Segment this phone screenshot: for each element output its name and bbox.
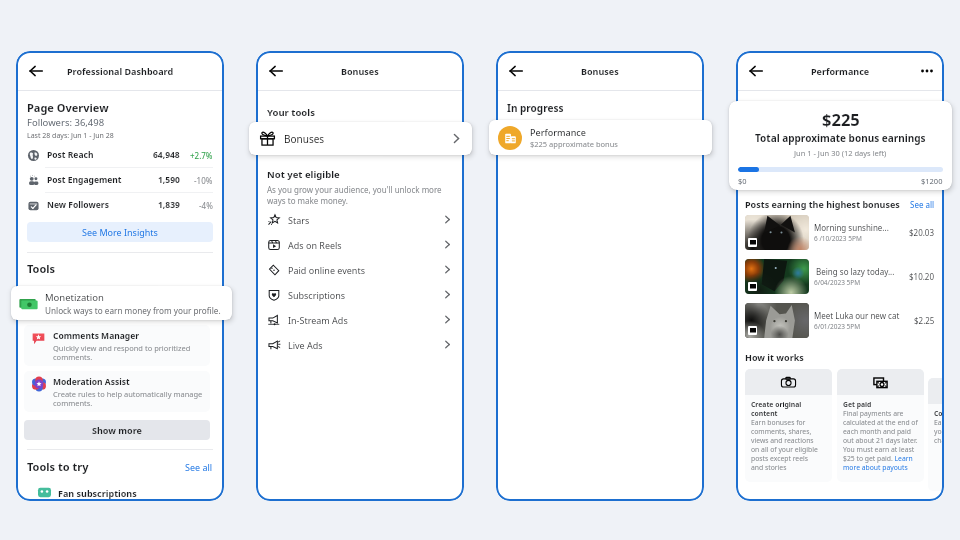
button[interactable]: Back [744,59,768,83]
button[interactable]: Morning sunshine... [745,210,935,254]
staticText: Followers: 36,498 [27,116,105,129]
staticText: Create original content [751,400,802,418]
staticText: See all [185,461,213,473]
button[interactable]: Bonuses [249,122,472,155]
staticText: Comments and [934,409,944,418]
button[interactable]: New Followers [27,193,213,217]
button[interactable]: See all [910,199,935,210]
staticText: Not yet eligible [267,168,340,181]
staticText: $20.03 [909,227,935,238]
staticText: 1,839 [158,199,180,211]
staticText: In progress [507,101,564,115]
staticText: Live Ads [288,339,442,351]
staticText: 64,948 [153,149,180,161]
staticText: 6 /10/2023 5PM [814,234,862,243]
staticText: Post Engagement [47,174,158,186]
staticText: Paid online events [288,264,442,276]
staticText: Professional Dashboard [67,65,174,77]
staticText: 6/04/2023 5PM [814,278,861,287]
staticText: Total approximate bonus earnings [755,131,926,145]
button[interactable]: Create original content [745,369,832,482]
staticText: Comments Manager [53,330,140,342]
staticText: Earn bonuses for comments, shares, views… [751,418,818,472]
staticText: Performance [530,126,586,138]
button[interactable]: Meet Luka our new cat [745,298,935,342]
staticText: Performance [811,65,870,77]
button[interactable]: Post Reach [27,143,213,167]
staticText: Stars [288,214,442,226]
staticText: $225 [822,108,860,130]
staticText: Bonuses [284,132,450,146]
staticText: Post Reach [47,149,153,161]
button[interactable]: More options [916,60,938,82]
button[interactable]: Subscriptions [267,282,453,307]
staticText: See all [910,199,935,210]
button[interactable]: Being so lazy today... [745,254,935,298]
staticText: Get paid [843,400,872,409]
staticText: Tools [27,261,56,276]
staticText: Final payments are calculated at the end… [843,409,918,472]
button[interactable]: Live Ads [267,332,453,357]
button[interactable]: Performance [489,120,712,155]
staticText: Monetization [45,291,104,304]
button[interactable]: Show more [24,420,210,440]
staticText: 6/01/2023 5PM [814,322,861,331]
staticText: -4% [199,200,213,211]
staticText: Earn bonuses you get on channel [934,418,944,445]
staticText: Create rules to help automatically manag… [53,389,203,409]
staticText: $10.20 [909,271,935,282]
staticText: Unlock ways to earn money from your prof… [45,305,221,316]
staticText: Subscriptions [288,289,442,301]
staticText: Your tools [267,106,315,119]
staticText: Show more [92,424,142,436]
staticText: $225 approximate bonus [530,139,618,149]
staticText: Meet Luka our new cat [814,310,900,321]
button[interactable]: Back [24,59,48,83]
staticText: Fan subscriptions [58,487,137,499]
staticText: Moderation Assist [53,376,130,388]
button[interactable]: Back [504,59,528,83]
staticText: Bonuses [341,65,379,77]
staticText: Jun 1 - Jun 30 (12 days left) [794,148,887,158]
button[interactable]: Monetization [11,286,232,320]
staticText: Being so lazy today... [814,266,895,277]
button[interactable]: Paid online events [267,257,453,282]
staticText: $2.25 [914,315,935,326]
staticText: Quickly view and respond to prioritized … [53,343,191,363]
button[interactable]: Comments and [928,378,944,491]
staticText: $1200 [921,176,943,185]
staticText: +2.7% [190,150,213,161]
staticText: Ads on Reels [288,239,442,251]
button[interactable]: See More Insights [27,222,213,242]
button[interactable]: Get paid [837,369,924,482]
staticText: Posts earning the highest bonuses [745,198,910,210]
button[interactable]: Ads on Reels [267,232,453,257]
button[interactable]: Back [264,59,288,83]
staticText: Page Overview [27,100,109,115]
staticText: Morning sunshine... [814,222,889,233]
staticText: In-Stream Ads [288,314,442,326]
button[interactable]: Comments Manager [24,325,210,366]
staticText: See More Insights [82,226,158,238]
button[interactable]: Post Engagement [27,168,213,192]
staticText: As you grow your audience, you'll unlock… [267,184,442,206]
button[interactable]: Moderation Assist [24,371,210,412]
staticText: Last 28 days: Jun 1 - Jun 28 [27,131,114,141]
staticText: -10% [194,175,213,186]
button[interactable]: In-Stream Ads [267,307,453,332]
button[interactable]: See all [185,461,213,473]
staticText: Tools to try [27,459,185,474]
staticText: $0 [738,176,921,185]
staticText: 1,590 [158,174,180,186]
button[interactable]: Stars [267,207,453,232]
staticText: How it works [745,351,804,363]
staticText: New Followers [47,199,158,211]
staticText: Bonuses [581,65,619,77]
